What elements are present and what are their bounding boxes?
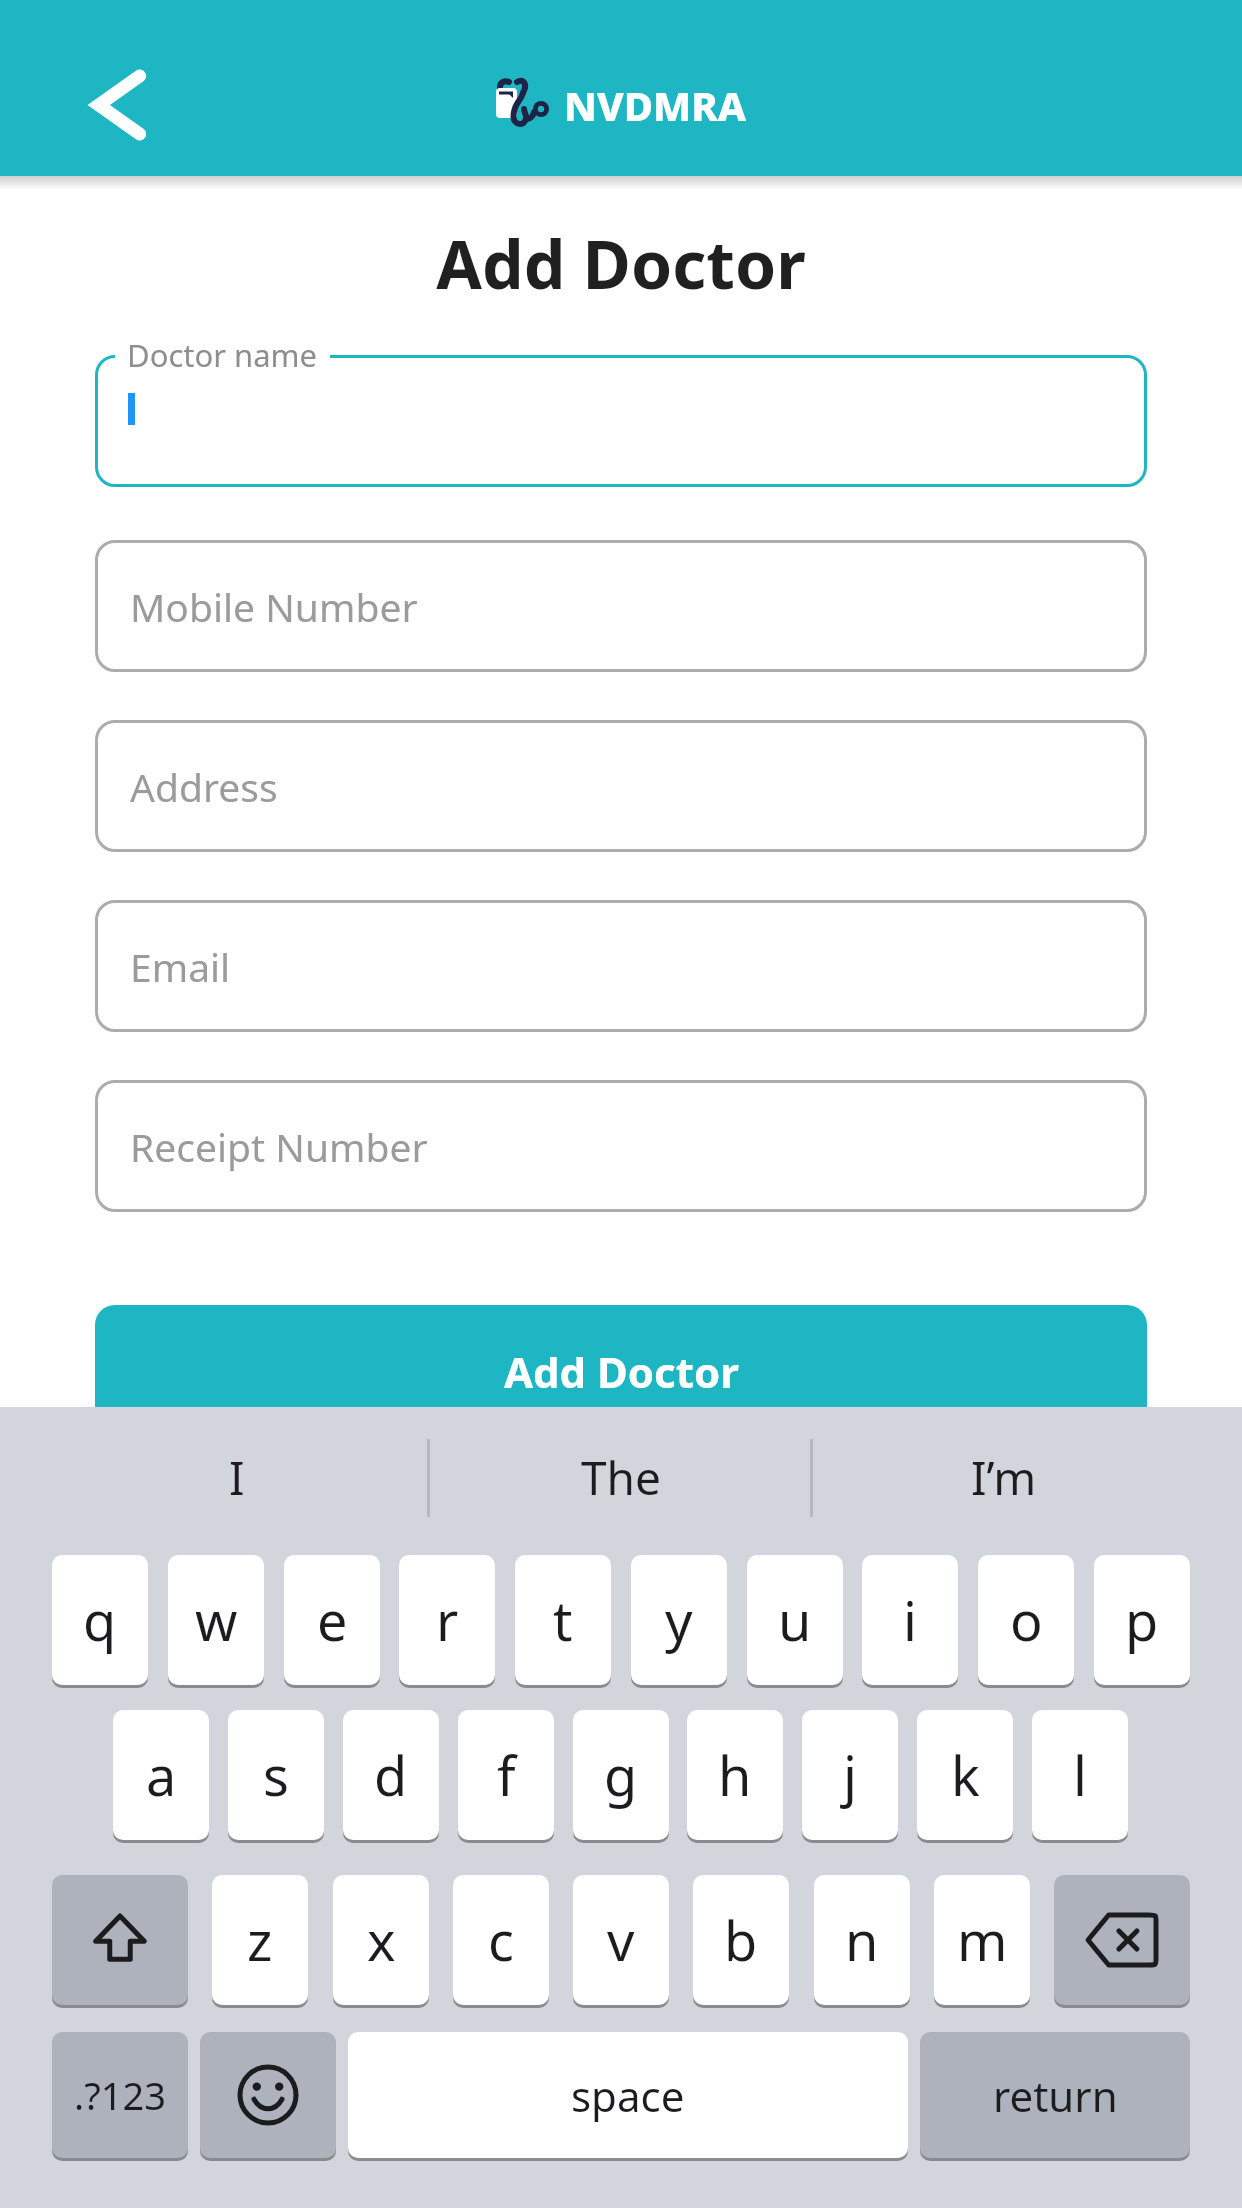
button[interactable]: d xyxy=(343,1710,439,1840)
button[interactable] xyxy=(95,73,165,143)
staticText: I’m xyxy=(971,1446,1037,1509)
staticText: l xyxy=(1073,1738,1087,1812)
staticText: Email xyxy=(130,940,231,993)
staticText: z xyxy=(247,1903,273,1977)
staticText: j xyxy=(843,1738,857,1812)
staticText: s xyxy=(263,1738,289,1812)
staticText: d xyxy=(374,1738,408,1812)
button[interactable] xyxy=(52,1875,188,2005)
staticText: q xyxy=(83,1583,117,1657)
staticText: r xyxy=(436,1583,459,1657)
staticText: g xyxy=(604,1738,638,1812)
button[interactable]: The xyxy=(541,1407,701,1548)
button[interactable]: m xyxy=(934,1875,1030,2005)
button[interactable]: x xyxy=(333,1875,429,2005)
button[interactable]: o xyxy=(978,1555,1074,1685)
button[interactable]: r xyxy=(399,1555,495,1685)
button[interactable]: h xyxy=(687,1710,783,1840)
button[interactable] xyxy=(200,2032,336,2158)
button[interactable]: k xyxy=(917,1710,1013,1840)
staticText: Add Doctor xyxy=(504,1343,739,1400)
staticText: Address xyxy=(130,760,278,813)
button[interactable]: t xyxy=(515,1555,611,1685)
staticText: x xyxy=(367,1903,396,1977)
staticText: h xyxy=(718,1738,752,1812)
button[interactable]: f xyxy=(458,1710,554,1840)
button[interactable]: space xyxy=(348,2032,908,2158)
button[interactable]: I’m xyxy=(924,1407,1084,1548)
staticText: m xyxy=(957,1903,1008,1977)
staticText: Add Doctor xyxy=(0,218,1242,308)
button[interactable]: .?123 xyxy=(52,2032,188,2158)
staticText: b xyxy=(724,1903,758,1977)
staticText: c xyxy=(488,1903,514,1977)
staticText: a xyxy=(146,1738,177,1812)
staticText: w xyxy=(195,1583,238,1657)
button[interactable]: w xyxy=(168,1555,264,1685)
button[interactable] xyxy=(95,355,1147,487)
button[interactable]: Address xyxy=(95,720,1147,852)
staticText: p xyxy=(1125,1583,1159,1657)
button[interactable]: q xyxy=(52,1555,148,1685)
button[interactable]: c xyxy=(453,1875,549,2005)
button[interactable]: Receipt Number xyxy=(95,1080,1147,1212)
button[interactable]: p xyxy=(1094,1555,1190,1685)
button[interactable]: n xyxy=(814,1875,910,2005)
button[interactable]: return xyxy=(920,2032,1190,2158)
button[interactable]: a xyxy=(113,1710,209,1840)
button[interactable]: v xyxy=(573,1875,669,2005)
staticText: The xyxy=(581,1446,661,1509)
staticText: o xyxy=(1010,1583,1043,1657)
button[interactable]: Add Doctor xyxy=(95,1305,1147,1437)
staticText: u xyxy=(778,1583,812,1657)
button[interactable]: s xyxy=(228,1710,324,1840)
button[interactable]: j xyxy=(802,1710,898,1840)
button[interactable]: b xyxy=(693,1875,789,2005)
staticText: Doctor name xyxy=(127,334,318,376)
button[interactable]: z xyxy=(212,1875,308,2005)
button[interactable]: g xyxy=(573,1710,669,1840)
staticText: n xyxy=(845,1903,879,1977)
staticText: f xyxy=(497,1738,516,1812)
button[interactable]: Mobile Number xyxy=(95,540,1147,672)
staticText: e xyxy=(317,1583,348,1657)
button[interactable]: i xyxy=(862,1555,958,1685)
staticText: Receipt Number xyxy=(130,1120,428,1173)
staticText: t xyxy=(553,1583,573,1657)
staticText: Mobile Number xyxy=(130,580,418,633)
button[interactable]: l xyxy=(1032,1710,1128,1840)
staticText: k xyxy=(951,1738,980,1812)
staticText: NVDMRA xyxy=(564,78,747,132)
staticText: v xyxy=(607,1903,635,1977)
staticText: .?123 xyxy=(74,2069,166,2121)
button[interactable]: I xyxy=(157,1407,317,1548)
button[interactable]: Email xyxy=(95,900,1147,1032)
staticText: I xyxy=(229,1446,245,1509)
button[interactable]: y xyxy=(631,1555,727,1685)
button[interactable]: u xyxy=(747,1555,843,1685)
staticText: i xyxy=(903,1583,917,1657)
staticText: return xyxy=(993,2067,1118,2124)
button[interactable] xyxy=(1054,1875,1190,2005)
staticText: space xyxy=(571,2067,685,2124)
button[interactable]: e xyxy=(284,1555,380,1685)
staticText: y xyxy=(665,1583,693,1657)
